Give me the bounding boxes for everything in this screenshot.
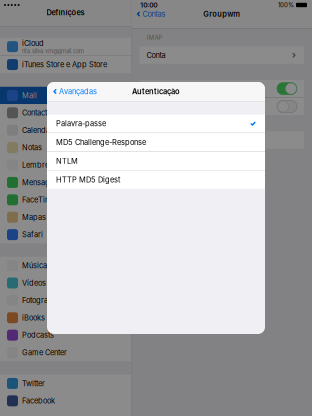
button[interactable]: Calendário (0, 122, 131, 139)
button[interactable]: iCloud (0, 38, 131, 55)
staticText: iTunes Store e App Store (22, 60, 107, 69)
staticText: iCloud (22, 39, 44, 48)
staticText: iBooks (22, 313, 45, 322)
button[interactable] (139, 98, 304, 115)
staticText: MD5 Challenge-Response (56, 138, 146, 147)
button[interactable]: Avançadas (47, 87, 97, 96)
staticText: Twitter (22, 379, 45, 388)
staticText: 100% (278, 1, 294, 9)
button[interactable]: NTLM (47, 152, 265, 170)
button[interactable]: HTTP MD5 Digest (47, 171, 265, 189)
staticText: Contas (142, 9, 165, 18)
button[interactable]: Música (0, 257, 131, 274)
staticText: Calendário (22, 126, 59, 135)
staticText: Avançadas (59, 87, 97, 96)
button[interactable] (139, 80, 304, 97)
button[interactable]: Lembretes (0, 156, 131, 174)
staticText: Contactos (22, 108, 55, 117)
button[interactable]: Vídeos (0, 274, 131, 292)
button[interactable]: Safari (0, 226, 131, 243)
staticText: Podcasts (22, 331, 54, 340)
button[interactable]: Mensagens (0, 174, 131, 191)
staticText: Música (22, 261, 47, 270)
button[interactable]: FaceTime (0, 191, 131, 209)
staticText: Vídeos (22, 278, 46, 287)
staticText: NTLM (56, 156, 78, 165)
button[interactable]: Contactos (0, 104, 131, 122)
staticText: Conta (146, 51, 165, 60)
staticText: FaceTime (22, 195, 56, 204)
staticText: Facebook (22, 396, 55, 405)
button[interactable]: iBooks (0, 309, 131, 326)
staticText: Fotografias (22, 296, 61, 305)
staticText: Definições (46, 8, 84, 17)
staticText: Safari (22, 230, 43, 239)
staticText: IMAP (146, 34, 162, 41)
staticText: rita.silva.vrn@gmail.com (22, 48, 84, 55)
button[interactable]: MD5 Challenge-Response (47, 133, 265, 151)
staticText: Notas (22, 143, 42, 152)
button[interactable]: Mail (0, 87, 131, 104)
button[interactable]: Conta (139, 46, 304, 64)
button[interactable]: Notas (0, 139, 131, 156)
button[interactable]: Contas (131, 9, 165, 18)
staticText: Groupwm (203, 9, 240, 18)
staticText: Lembretes (22, 160, 59, 169)
button[interactable]: Game Center (0, 344, 131, 361)
button[interactable]: Fotografias (0, 292, 131, 309)
staticText: 10:00 (140, 1, 157, 9)
button[interactable]: Podcasts (0, 326, 131, 344)
staticText: HTTP MD5 Digest (56, 175, 120, 184)
staticText: Mapas (22, 213, 46, 222)
staticText: Autenticação (132, 87, 180, 96)
staticText: Mail (22, 91, 37, 100)
staticText: Palavra-passe (56, 119, 106, 128)
button[interactable]: iTunes Store e App Store (0, 56, 131, 73)
button[interactable]: Twitter (0, 375, 131, 392)
staticText: Game Center (22, 348, 67, 357)
staticText: Mensagens (22, 178, 62, 187)
button[interactable]: Facebook (0, 392, 131, 409)
button[interactable]: Palavra-passe (47, 114, 265, 133)
button[interactable] (139, 131, 304, 149)
button[interactable]: Mapas (0, 209, 131, 226)
